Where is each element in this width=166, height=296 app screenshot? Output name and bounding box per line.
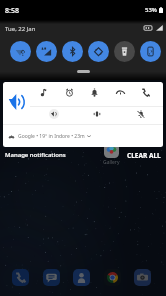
staticText: Gallery — [103, 159, 120, 166]
button[interactable]: Phone — [12, 269, 29, 286]
button[interactable]: CLEAR ALL — [127, 151, 166, 160]
button[interactable]: Camera — [134, 269, 151, 286]
button[interactable]: Auto rotate — [85, 38, 111, 64]
button[interactable]: Phone ringer — [138, 85, 152, 99]
button[interactable]: Flashlight — [111, 38, 137, 64]
button[interactable]: Media volume — [36, 85, 50, 99]
button[interactable]: Alarm volume — [62, 85, 76, 99]
button[interactable]: Vibrate — [90, 107, 104, 121]
button[interactable]: Manage notifications — [0, 151, 66, 159]
staticText: 8:58 — [5, 6, 19, 16]
button[interactable]: Ring — [49, 109, 59, 119]
button[interactable]: Screen cast — [137, 38, 163, 64]
button[interactable]: Bluetooth — [59, 38, 85, 64]
button[interactable]: Call volume — [113, 85, 127, 99]
button[interactable]: Wi-Fi — [7, 38, 33, 64]
button[interactable]: Mobile data — [33, 38, 59, 64]
staticText: 53% — [145, 6, 157, 14]
button[interactable]: Edit tiles — [143, 23, 152, 32]
button[interactable]: Ring volume — [87, 85, 101, 99]
button[interactable]: Contacts — [73, 269, 90, 286]
button[interactable]: Silent — [134, 107, 148, 121]
staticText: Google • 19° in Indore • 23m — [18, 133, 85, 140]
staticText: Tue, 22 Jan — [5, 25, 36, 33]
button[interactable]: Settings — [154, 23, 163, 32]
button[interactable]: Chrome — [104, 269, 121, 286]
button[interactable]: Google • 19° in Indore • 23m — [3, 125, 163, 147]
button[interactable]: Messages — [43, 269, 60, 286]
